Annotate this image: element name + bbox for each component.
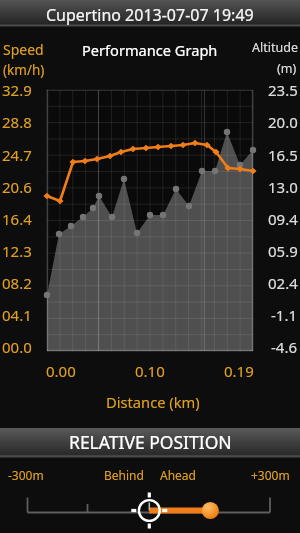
staticText: 00.0 xyxy=(2,337,32,357)
button[interactable]: RELATIVE POSITION xyxy=(0,428,300,458)
button[interactable]: Cupertino 2013-07-07 19:49 xyxy=(0,0,300,27)
staticText: 12.3 xyxy=(2,241,32,261)
staticText: -4.6 xyxy=(271,337,298,357)
staticText: (m) xyxy=(277,60,297,77)
staticText: Behind xyxy=(104,467,144,483)
staticText: +300m xyxy=(251,467,290,483)
button[interactable]: Relative position slider xyxy=(0,488,300,533)
staticText: Cupertino 2013-07-07 19:49 xyxy=(46,4,254,26)
staticText: 32.9 xyxy=(2,80,32,100)
staticText: 24.7 xyxy=(2,145,32,165)
staticText: 20.6 xyxy=(2,177,32,197)
staticText: -300m xyxy=(8,467,44,483)
staticText: Distance (km) xyxy=(106,392,200,412)
staticText: 0.10 xyxy=(135,361,165,381)
staticText: 05.9 xyxy=(268,241,298,261)
staticText: 0.19 xyxy=(224,361,254,381)
staticText: Speed xyxy=(3,40,44,59)
staticText: 02.4 xyxy=(268,273,298,293)
staticText: 0.00 xyxy=(46,361,76,381)
staticText: -1.1 xyxy=(271,305,298,325)
staticText: 16.5 xyxy=(268,145,298,165)
staticText: 04.1 xyxy=(2,305,32,325)
staticText: 08.2 xyxy=(2,273,32,293)
staticText: (km/h) xyxy=(3,61,45,79)
staticText: 23.5 xyxy=(268,80,298,100)
staticText: Ahead xyxy=(160,467,196,483)
staticText: Performance Graph xyxy=(82,40,218,60)
staticText: RELATIVE POSITION xyxy=(69,430,232,454)
staticText: 16.4 xyxy=(2,209,32,229)
staticText: 28.8 xyxy=(2,112,32,132)
staticText: 09.4 xyxy=(268,209,298,229)
staticText: Altitude xyxy=(252,39,298,56)
staticText: 20.0 xyxy=(268,112,298,132)
staticText: 13.0 xyxy=(268,177,298,197)
